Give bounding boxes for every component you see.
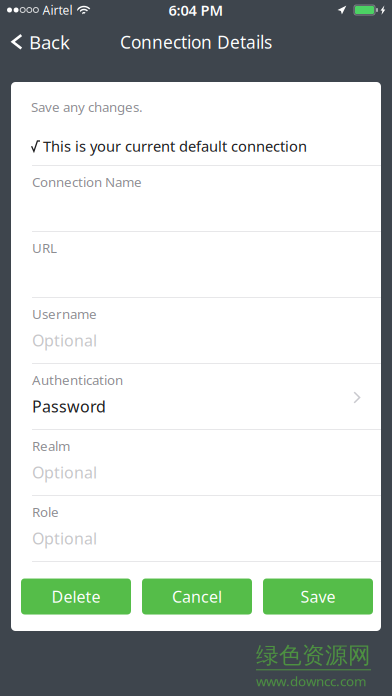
staticText: Save <box>300 586 335 607</box>
staticText: Optional <box>32 528 97 549</box>
staticText: Save any changes. <box>31 98 143 116</box>
staticText: 绿色资源网 <box>256 641 371 669</box>
staticText: Connection Details <box>120 30 272 53</box>
staticText: www.downcc.com <box>256 672 366 690</box>
staticText: URL <box>32 239 57 257</box>
staticText: Realm <box>32 437 70 455</box>
staticText: Password <box>32 396 106 417</box>
button[interactable]: Save <box>263 578 373 614</box>
button[interactable]: Delete <box>21 578 131 614</box>
button[interactable]: Back <box>0 20 80 64</box>
staticText: Delete <box>51 586 100 607</box>
staticText: Cancel <box>172 586 222 607</box>
staticText: Username <box>32 305 97 323</box>
staticText: Optional <box>32 330 97 351</box>
staticText: Optional <box>32 462 97 483</box>
button[interactable]: Cancel <box>142 578 252 614</box>
staticText: Connection Name <box>32 173 142 191</box>
staticText: Back <box>29 30 70 54</box>
staticText: Authentication <box>32 371 123 389</box>
staticText: This is your current default connection <box>43 136 307 156</box>
staticText: Role <box>32 503 59 521</box>
staticText: Airtel <box>42 2 72 18</box>
staticText: 6:04 PM <box>168 0 223 20</box>
